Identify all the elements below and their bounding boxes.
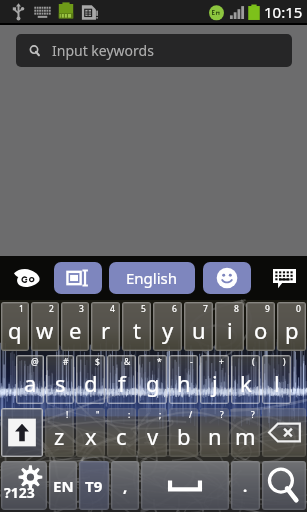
button[interactable]: b (169, 408, 198, 457)
button[interactable]: English (109, 262, 195, 294)
staticText: * (157, 356, 162, 368)
staticText: n (208, 421, 222, 451)
staticText: + (219, 356, 224, 368)
button[interactable]: Space (141, 461, 229, 510)
button[interactable]: Shift (1, 408, 43, 457)
staticText: c (116, 421, 127, 451)
staticText: . (243, 476, 248, 496)
staticText: y (162, 315, 174, 345)
button[interactable]: y (153, 302, 182, 351)
button[interactable]: x (76, 408, 105, 457)
button[interactable]: g (138, 355, 167, 404)
button[interactable]: u (184, 302, 213, 351)
staticText: i (227, 315, 233, 345)
button[interactable]: c (107, 408, 136, 457)
button[interactable]: l (262, 355, 291, 404)
staticText: g (146, 368, 160, 398)
button[interactable]: i (215, 302, 244, 351)
button[interactable]: Symbols and settings (1, 461, 47, 510)
button[interactable]: v (138, 408, 167, 457)
staticText: ?123 (4, 483, 35, 502)
button[interactable]: , (111, 461, 139, 510)
staticText: T9 (85, 476, 103, 496)
staticText: " (96, 409, 100, 421)
button[interactable]: r (91, 302, 120, 351)
button[interactable]: a (16, 355, 44, 404)
staticText: 10:15 (264, 2, 303, 22)
button[interactable]: EN (49, 461, 77, 510)
staticText: - (190, 356, 193, 368)
button[interactable]: j (200, 355, 229, 404)
button[interactable]: T9 (79, 461, 109, 510)
staticText: & (124, 356, 131, 368)
staticText: v (147, 421, 159, 451)
staticText: , (123, 476, 128, 496)
staticText: j (212, 368, 218, 398)
staticText: w (36, 315, 54, 345)
staticText: 3 (79, 303, 84, 315)
staticText: q (8, 315, 22, 345)
button[interactable]: t (122, 302, 151, 351)
staticText: Input keywords (52, 41, 154, 60)
button[interactable]: z (45, 408, 74, 457)
staticText: l (274, 368, 280, 398)
staticText: ; (159, 409, 162, 421)
button[interactable]: w (31, 302, 59, 351)
button[interactable]: h (169, 355, 198, 404)
button[interactable]: o (246, 302, 275, 351)
button[interactable]: p (277, 302, 306, 351)
staticText: English (126, 268, 178, 288)
button[interactable]: s (46, 355, 74, 404)
staticText: 9 (265, 303, 270, 315)
button[interactable]: q (1, 302, 29, 351)
staticText: ! (66, 409, 69, 421)
staticText: $ (95, 356, 100, 368)
staticText: 4 (110, 303, 115, 315)
staticText: z (54, 421, 65, 451)
button[interactable]: d (76, 355, 105, 404)
button[interactable]: k (231, 355, 260, 404)
staticText: 5 (141, 303, 146, 315)
staticText: u (192, 315, 206, 345)
staticText: x (85, 421, 97, 451)
staticText: p (285, 315, 299, 345)
staticText: f (118, 368, 126, 398)
button[interactable]: n (200, 408, 229, 457)
staticText: b (177, 421, 191, 451)
button[interactable]: m (231, 408, 260, 457)
button[interactable]: f (107, 355, 136, 404)
staticText: EN (53, 476, 74, 496)
staticText: d (84, 368, 98, 398)
staticText: @ (31, 356, 39, 368)
staticText: k (240, 368, 252, 398)
staticText: ( (252, 356, 255, 368)
staticText: : (128, 409, 131, 421)
staticText: ? (220, 409, 224, 421)
staticText: ) (283, 356, 286, 368)
button[interactable]: Emoji (203, 262, 251, 294)
button[interactable]: Search (262, 461, 306, 510)
staticText: a (24, 368, 37, 398)
button[interactable]: Input keywords (16, 34, 292, 67)
staticText: 1 (19, 303, 24, 315)
staticText: 2 (49, 303, 54, 315)
button[interactable]: Backspace (262, 408, 306, 457)
staticText: s (55, 368, 66, 398)
staticText: # (63, 356, 69, 368)
staticText: h (177, 368, 191, 398)
staticText: r (101, 315, 111, 345)
staticText: 8 (234, 303, 239, 315)
staticText: t (133, 315, 141, 345)
staticText: ? (251, 409, 255, 421)
staticText: 7 (203, 303, 208, 315)
staticText: 0 (296, 303, 301, 315)
button[interactable]: Keyboard (262, 256, 307, 300)
button[interactable]: GO (0, 256, 54, 300)
staticText: / (189, 409, 193, 421)
button[interactable]: e (61, 302, 89, 351)
button[interactable]: Switch layout (54, 262, 102, 294)
staticText: 6 (172, 303, 177, 315)
button[interactable]: . (231, 461, 260, 510)
staticText: m (235, 421, 256, 451)
staticText: o (254, 315, 268, 345)
